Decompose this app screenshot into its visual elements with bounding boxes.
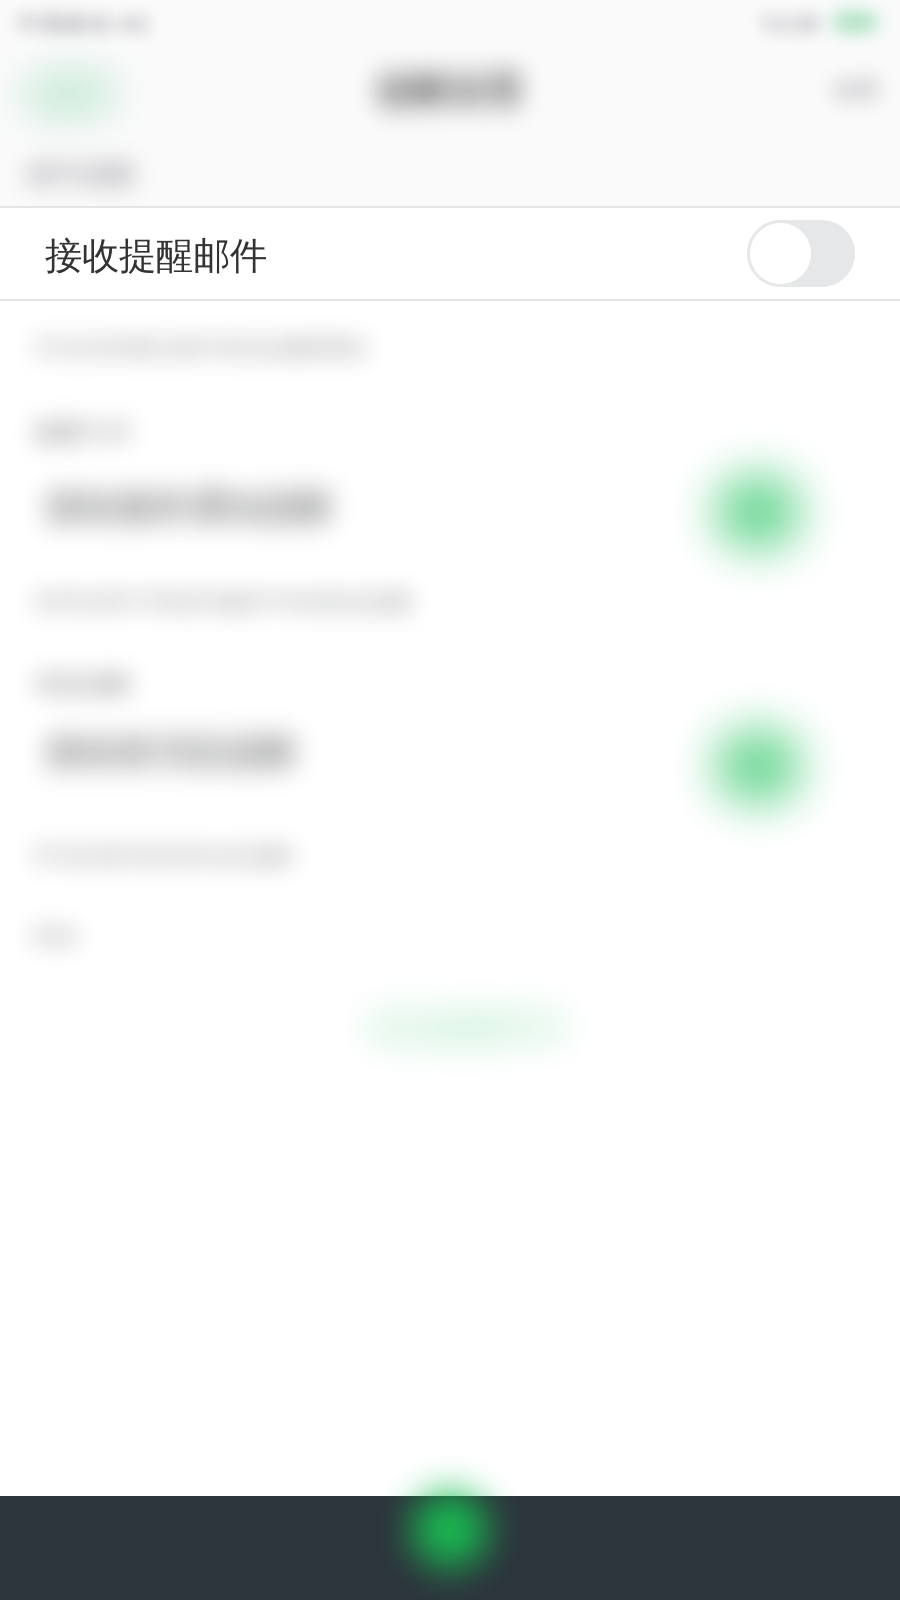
button[interactable]: 添加提醒时间 (0, 0, 900, 1600)
staticText: 其他 (30, 755, 78, 785)
staticText: 接收服务通知提醒 (45, 295, 333, 339)
staticText: 提醒方式 (32, 250, 132, 281)
staticText: 开启后新消息将在此提醒 (30, 671, 294, 701)
staticText: 邮件提醒 (28, 0, 136, 20)
staticText: 接收提醒邮件 (45, 233, 267, 279)
button[interactable]: 更多 (0, 0, 900, 1600)
button[interactable]: 接收提醒邮件 (0, 206, 900, 301)
button[interactable]: 返回 (0, 0, 900, 1600)
staticText: 关闭后将不再收到服务号的推送提醒 (30, 417, 414, 447)
staticText: 消息提醒 (32, 502, 132, 533)
staticText: 开启后将通过邮件推送提醒通知 (32, 163, 368, 193)
